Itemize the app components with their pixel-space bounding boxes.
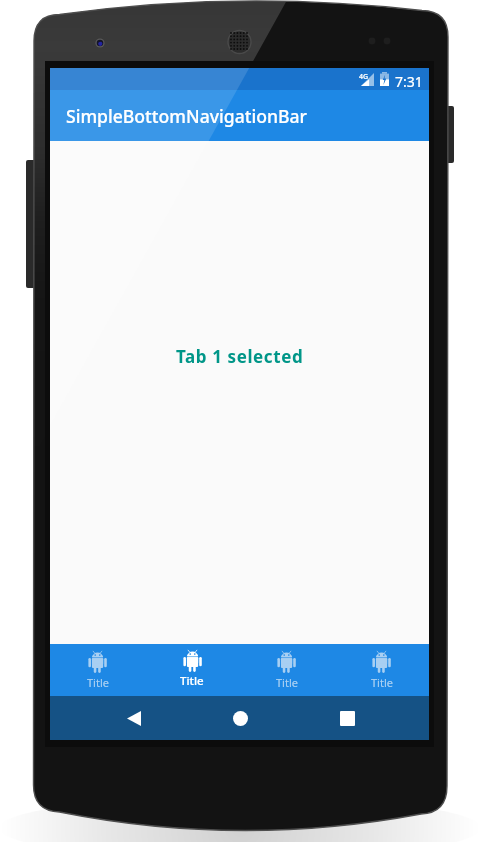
- staticText: 4G: [359, 72, 369, 82]
- button[interactable]: Back: [80, 696, 187, 740]
- button[interactable]: Recents: [294, 696, 401, 740]
- button[interactable]: Home: [187, 696, 294, 740]
- staticText: Title: [276, 675, 298, 690]
- staticText: Title: [180, 673, 204, 689]
- button[interactable]: Title: [334, 644, 429, 696]
- staticText: 7:31: [395, 72, 423, 91]
- staticText: Title: [371, 675, 393, 690]
- button[interactable]: Title: [239, 644, 334, 696]
- button[interactable]: Title: [50, 644, 144, 696]
- staticText: Title: [87, 675, 109, 690]
- staticText: Tab 1 selected: [176, 345, 304, 368]
- staticText: SimpleBottomNavigationBar: [66, 104, 307, 128]
- button[interactable]: Title: [144, 644, 239, 696]
